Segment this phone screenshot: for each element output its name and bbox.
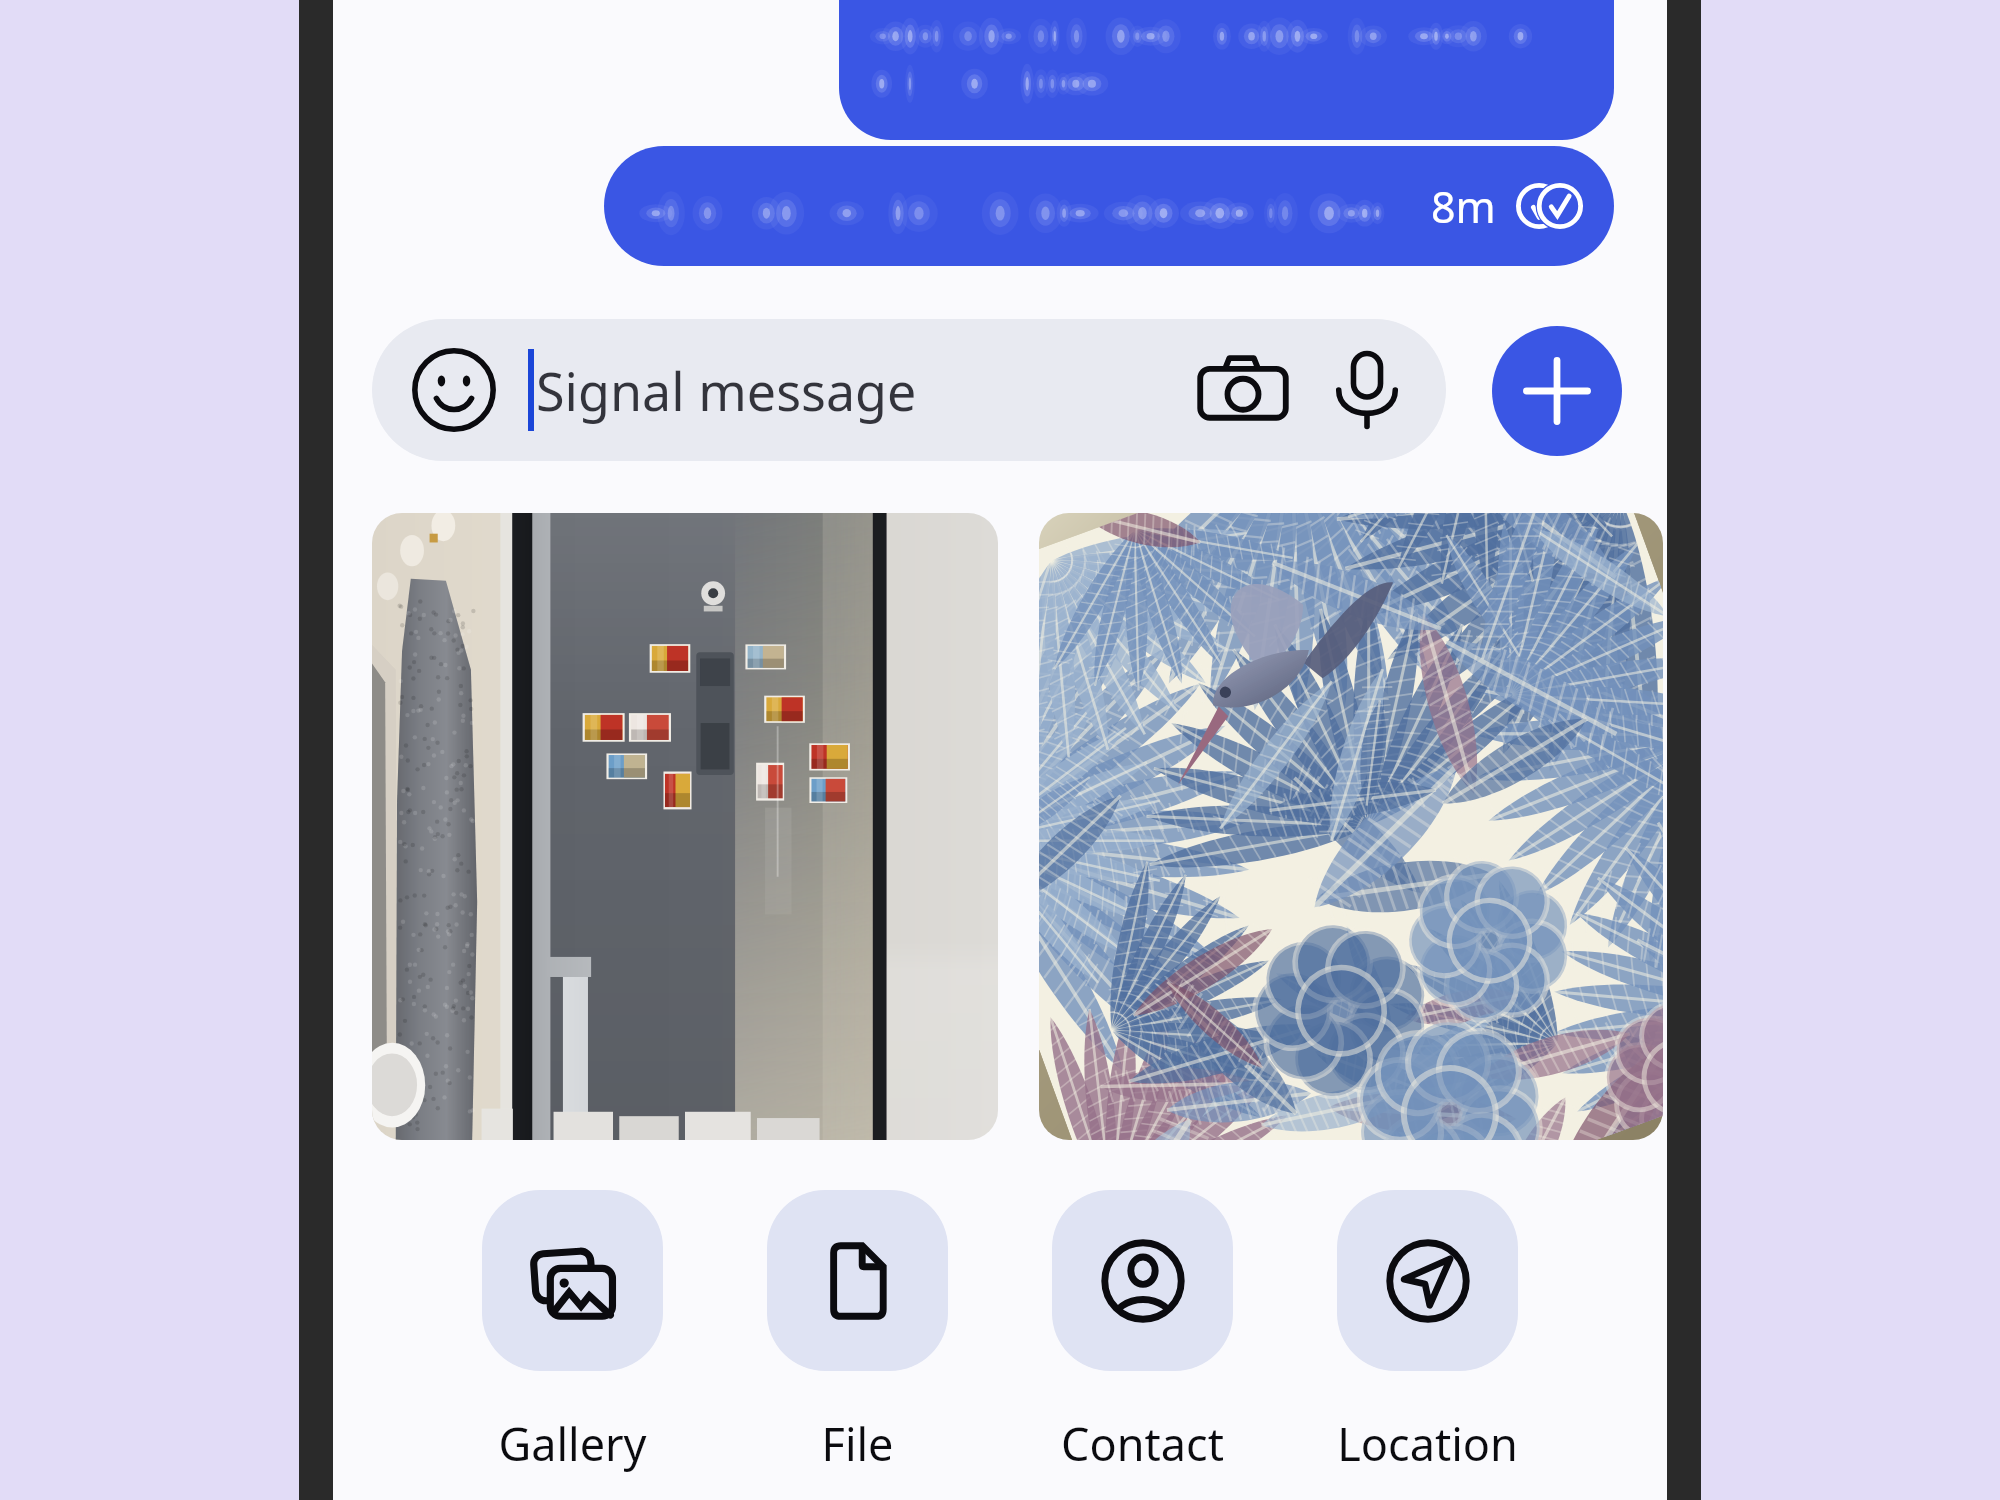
button[interactable]: Photo of bird pattern [1039, 513, 1663, 1140]
button[interactable]: File [727, 1190, 988, 1474]
button[interactable]: Emoji [372, 319, 1446, 461]
staticText: Location [1297, 1413, 1558, 1474]
button[interactable]: Voice message [1326, 349, 1408, 431]
staticText: 8m [1431, 177, 1496, 236]
button[interactable]: Camera [1196, 343, 1290, 437]
button[interactable]: Contact [1012, 1190, 1273, 1474]
staticText: Contact [1012, 1413, 1273, 1474]
button[interactable]: Photo of fridge [372, 513, 998, 1140]
button[interactable]: 8m [604, 146, 1614, 266]
button[interactable] [839, 0, 1614, 140]
button[interactable]: Location [1297, 1190, 1558, 1474]
staticText: Signal message [536, 355, 917, 426]
staticText: File [727, 1413, 988, 1474]
staticText: Gallery [442, 1413, 703, 1474]
button[interactable]: Gallery [442, 1190, 703, 1474]
button[interactable]: Add attachment [1492, 326, 1622, 456]
button[interactable]: Emoji [410, 346, 498, 434]
